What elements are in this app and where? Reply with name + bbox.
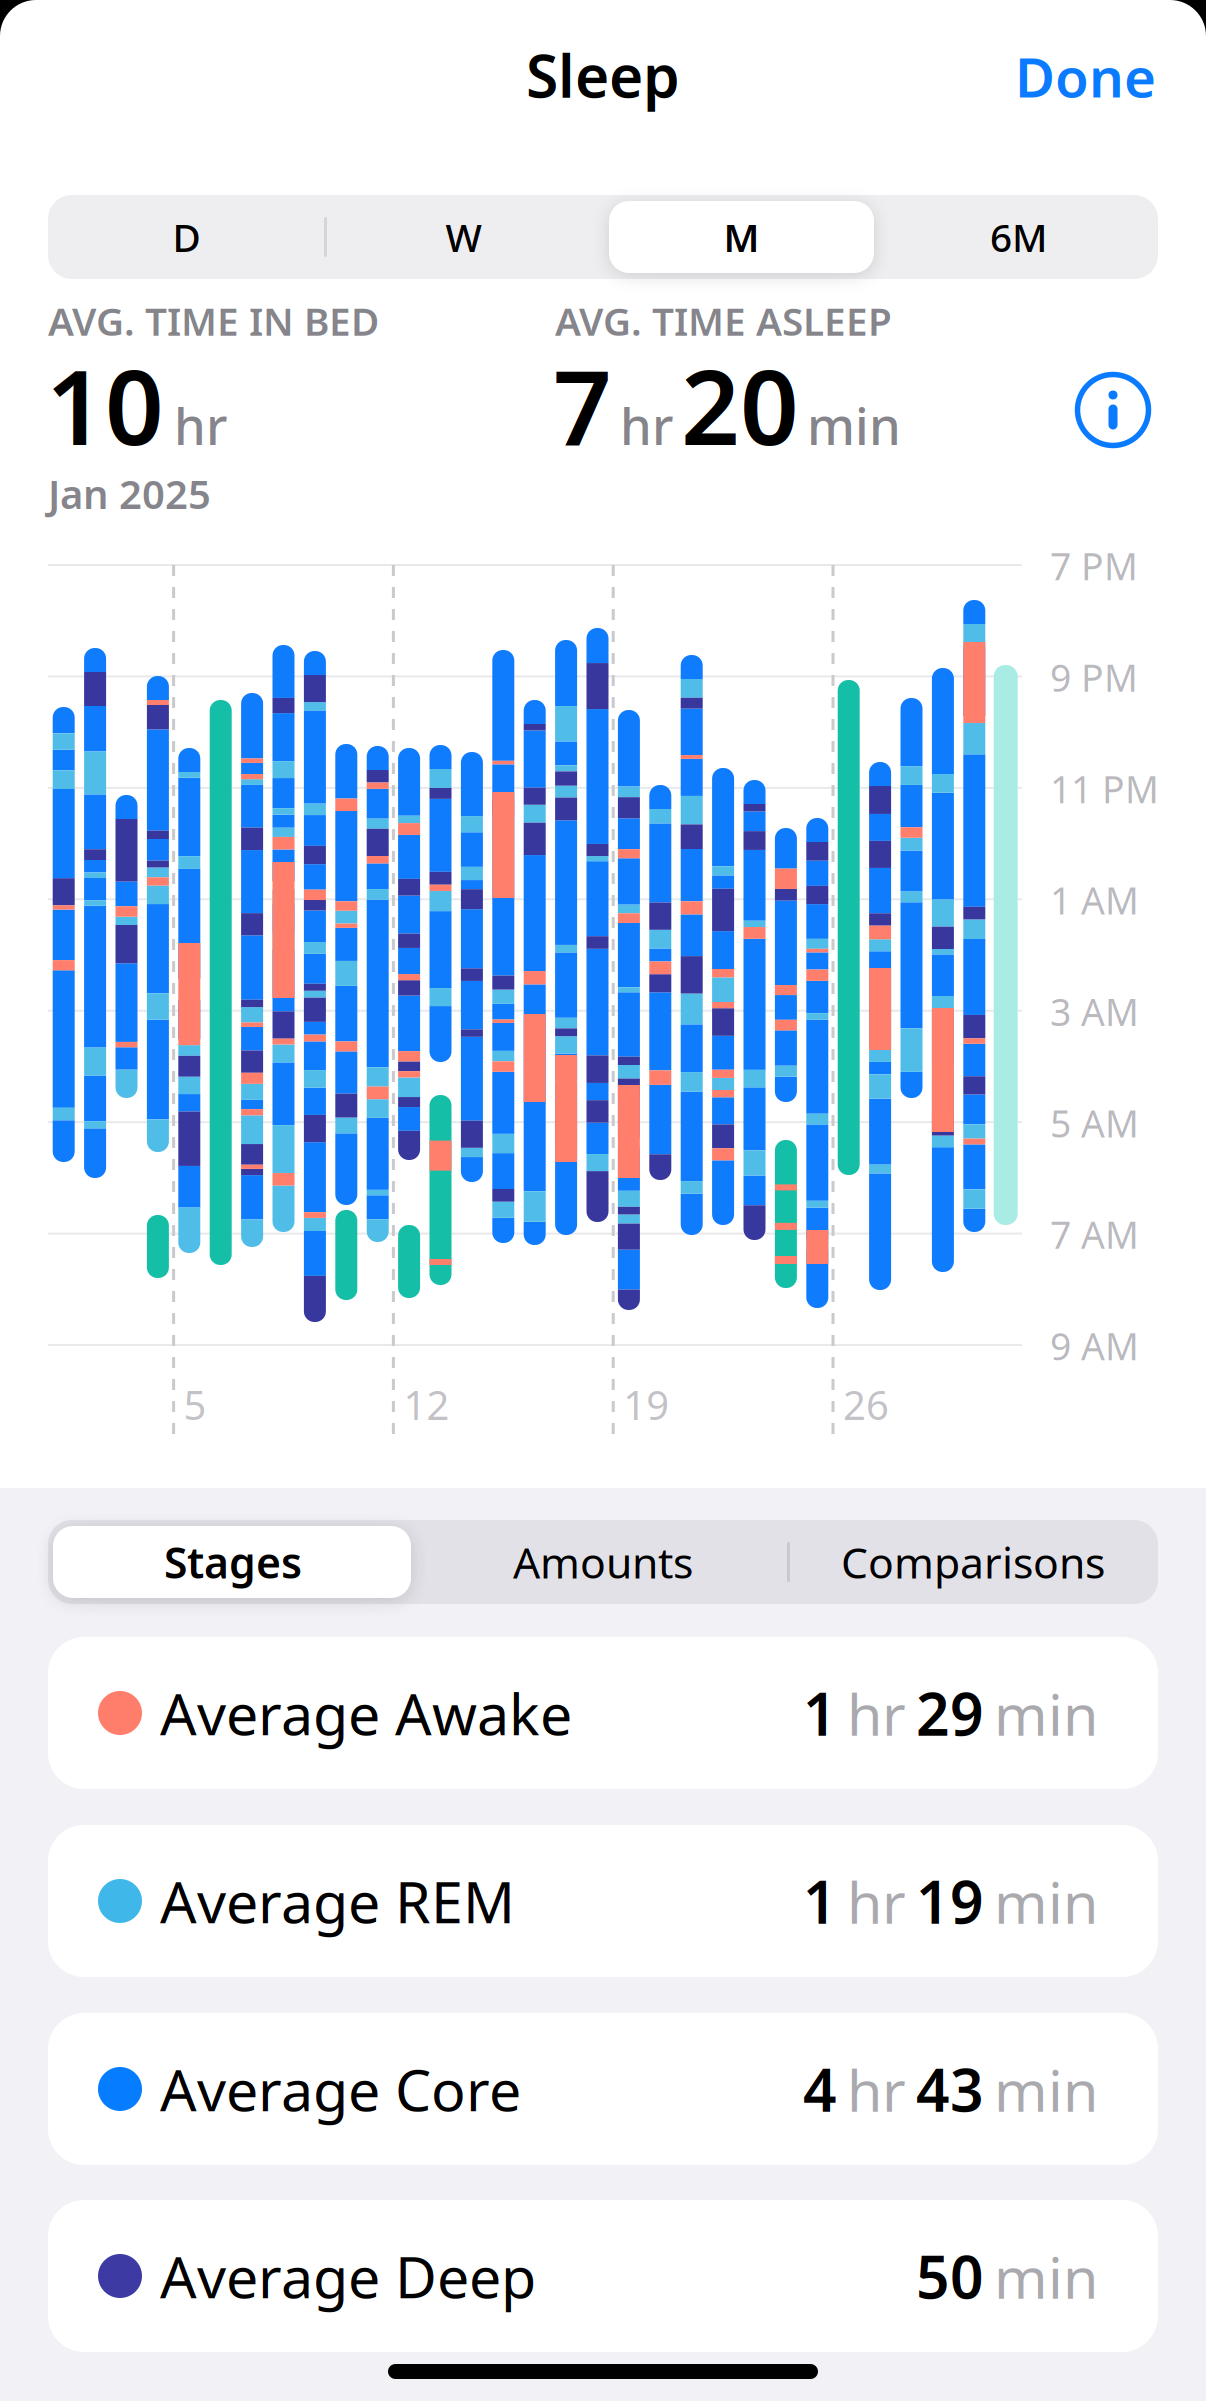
staticText: 1 [803, 1674, 837, 1752]
button[interactable]: 6M [880, 195, 1157, 279]
staticText: min [994, 1675, 1098, 1751]
staticText: hr [847, 1863, 906, 1939]
staticText: 20 [681, 337, 799, 473]
staticText: 9 PM [1050, 652, 1138, 702]
staticText: 7 AM [1050, 1210, 1139, 1259]
staticText: 26 [843, 1378, 889, 1431]
staticText: 19 [623, 1378, 669, 1431]
button[interactable]: M [603, 195, 880, 279]
button[interactable]: Amounts [418, 1520, 788, 1604]
staticText: W [445, 211, 481, 263]
staticText: 43 [916, 2050, 984, 2128]
staticText: 7 PM [1050, 541, 1138, 591]
staticText: min [994, 2238, 1098, 2314]
staticText: 3 AM [1050, 987, 1139, 1036]
staticText: Done [1015, 40, 1156, 113]
button[interactable]: Done [1015, 40, 1156, 113]
staticText: Average Deep [160, 2238, 536, 2314]
staticText: 9 AM [1050, 1321, 1139, 1371]
staticText: 11 PM [1050, 764, 1159, 813]
staticText: 1 AM [1050, 875, 1139, 925]
staticText: Jan 2025 [48, 467, 211, 520]
staticText: AVG. TIME IN BED [48, 295, 379, 346]
staticText: min [994, 1863, 1098, 1939]
staticText: hr [847, 1675, 906, 1751]
staticText: min [994, 2051, 1098, 2127]
staticText: M [723, 211, 759, 263]
button[interactable]: About Sleep [1075, 372, 1151, 448]
staticText: 29 [916, 1674, 984, 1752]
staticText: min [807, 392, 901, 459]
staticText: Average Awake [160, 1675, 572, 1751]
staticText: D [172, 211, 200, 263]
staticText: 6M [990, 211, 1047, 263]
button[interactable]: W [325, 195, 602, 279]
staticText: AVG. TIME ASLEEP [555, 295, 892, 346]
staticText: 5 AM [1050, 1098, 1139, 1148]
staticText: 19 [916, 1862, 984, 1940]
button[interactable]: Stages [48, 1520, 418, 1604]
staticText: 50 [916, 2237, 984, 2315]
staticText: 10 [46, 337, 164, 473]
button[interactable]: Comparisons [788, 1520, 1158, 1604]
staticText: 12 [403, 1378, 449, 1431]
staticText: Average REM [160, 1863, 515, 1939]
button[interactable]: D [48, 195, 325, 279]
staticText: 4 [803, 2050, 837, 2128]
staticText: hr [174, 392, 227, 459]
staticText: Sleep [526, 36, 680, 114]
staticText: Average Core [160, 2051, 521, 2127]
staticText: hr [847, 2051, 906, 2127]
staticText: 1 [803, 1862, 837, 1940]
staticText: 7 [553, 337, 612, 473]
staticText: Stages [164, 1534, 302, 1590]
staticText: Amounts [513, 1534, 693, 1590]
staticText: hr [620, 392, 673, 459]
staticText: 5 [184, 1378, 207, 1431]
staticText: Comparisons [841, 1534, 1105, 1590]
